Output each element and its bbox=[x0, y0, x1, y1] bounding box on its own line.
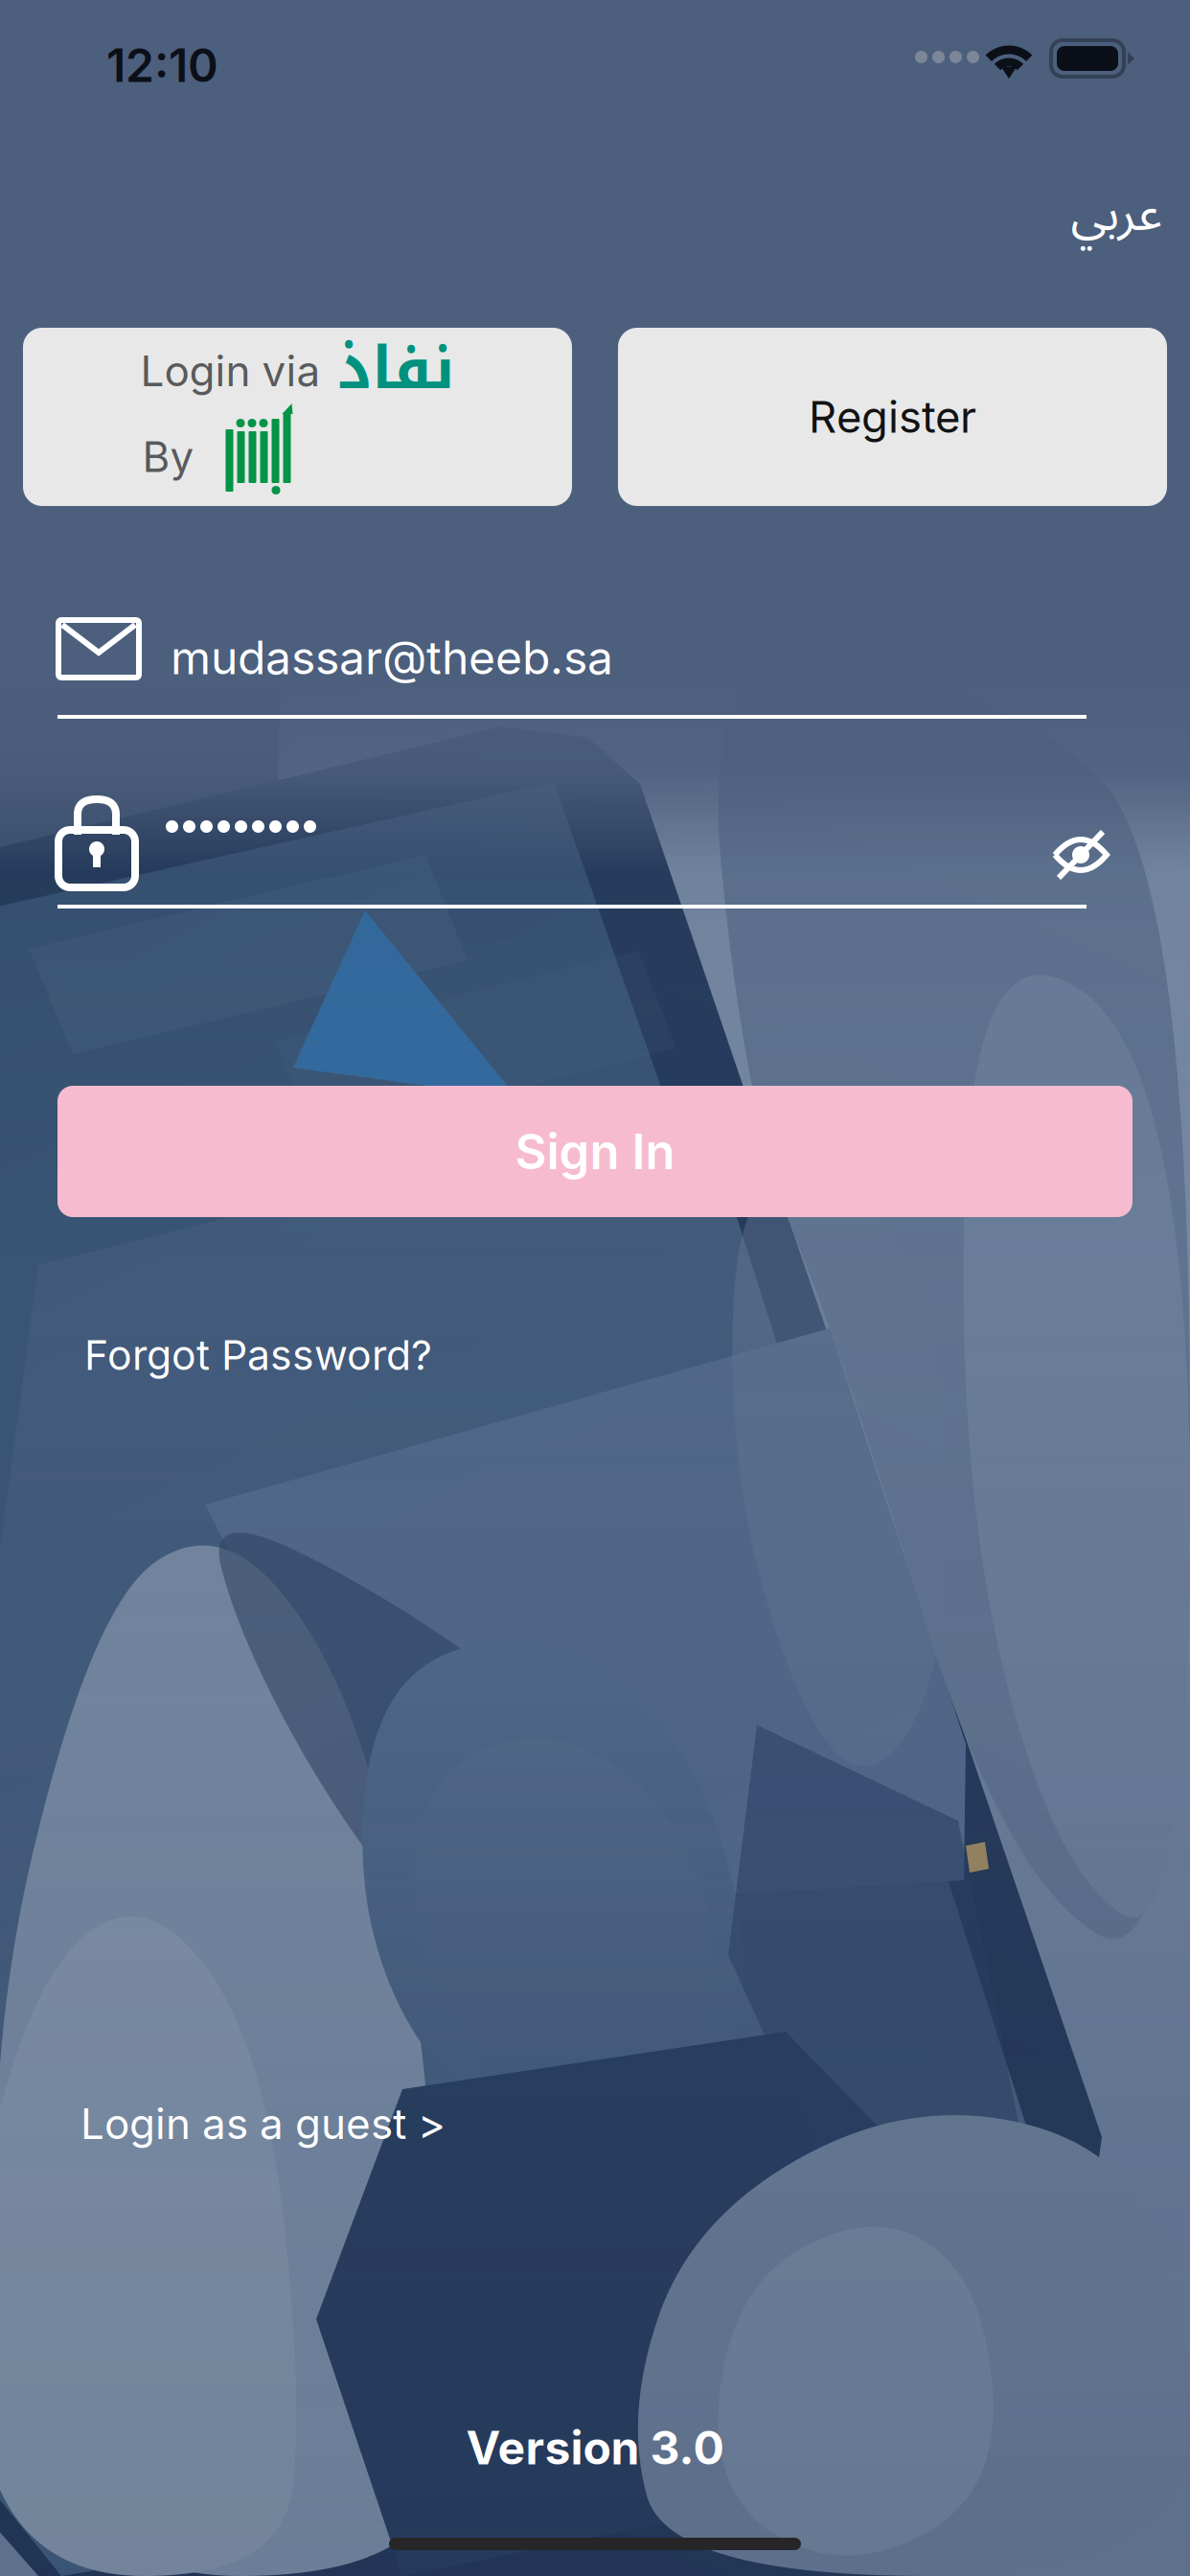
button[interactable]: Login as a guest > bbox=[80, 2089, 492, 2158]
button[interactable]: Sign In bbox=[57, 1086, 1133, 1217]
staticText: Sign In bbox=[515, 1122, 675, 1181]
button[interactable]: Show password bbox=[1033, 811, 1129, 899]
staticText: 12:10 bbox=[106, 37, 218, 93]
button[interactable]: عربي bbox=[1008, 176, 1161, 253]
button[interactable]: Login via bbox=[23, 328, 572, 506]
staticText: mudassar@theeb.sa bbox=[171, 630, 613, 685]
staticText: نفاذ bbox=[337, 313, 455, 425]
staticText: Login via bbox=[140, 345, 320, 396]
staticText: عربي bbox=[1070, 163, 1161, 266]
staticText: Version 3.0 bbox=[466, 2420, 724, 2475]
staticText: By bbox=[142, 431, 194, 482]
button[interactable]: Register bbox=[618, 328, 1167, 506]
staticText: Register bbox=[809, 391, 976, 443]
staticText: Login as a guest > bbox=[80, 2098, 446, 2149]
staticText: Forgot Password? bbox=[84, 1330, 432, 1380]
button[interactable]: Forgot Password? bbox=[84, 1322, 468, 1389]
